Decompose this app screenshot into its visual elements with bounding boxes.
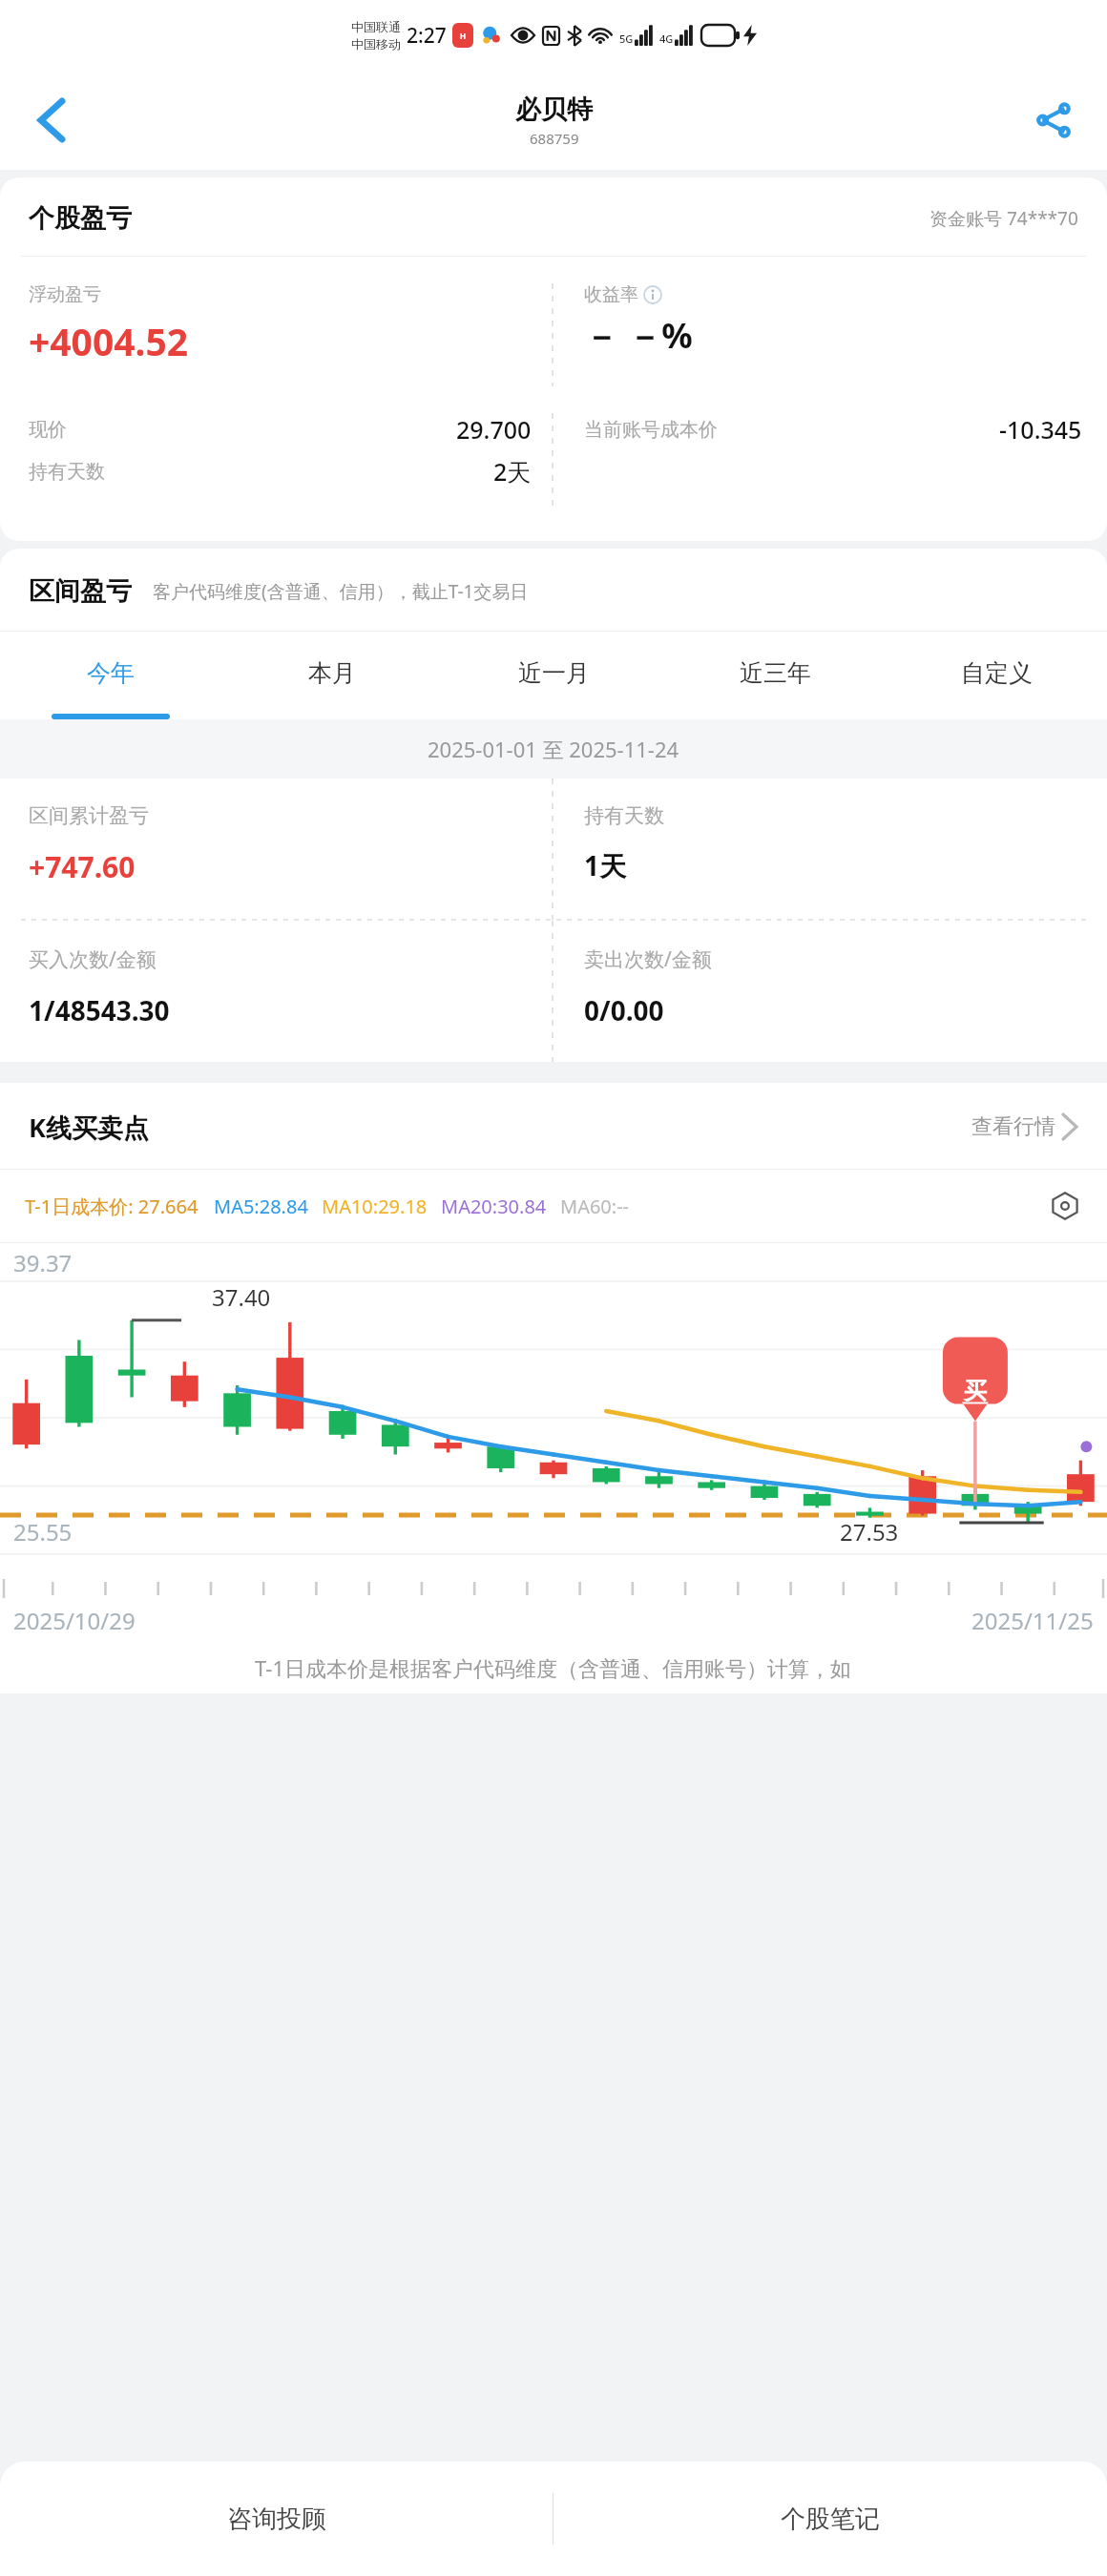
staticText: 688759 bbox=[530, 129, 579, 148]
button[interactable]: 个股笔记 bbox=[553, 2462, 1107, 2576]
button[interactable]: 近一月 bbox=[443, 632, 664, 714]
staticText: MA60:-- bbox=[560, 1194, 630, 1219]
staticText: 37.40 bbox=[212, 1281, 271, 1313]
staticText: 必贝特 bbox=[515, 93, 593, 126]
button[interactable]: Chart settings bbox=[1046, 1187, 1084, 1225]
staticText: 近三年 bbox=[740, 658, 811, 688]
staticText: MA5:28.84 bbox=[214, 1194, 308, 1219]
staticText: 本月 bbox=[308, 658, 356, 688]
staticText: MA10:29.18 bbox=[322, 1194, 428, 1219]
staticText: 区间盈亏 bbox=[29, 575, 132, 608]
staticText: 中国移动 bbox=[351, 36, 401, 52]
staticText: 0/0.00 bbox=[584, 992, 664, 1028]
staticText: 29.700 bbox=[456, 413, 532, 446]
staticText: 咨询投顾 bbox=[227, 2503, 326, 2535]
staticText: 卖出次数/金额 bbox=[584, 945, 712, 973]
staticText: H bbox=[460, 31, 467, 41]
staticText: 买 bbox=[964, 1377, 987, 1405]
staticText: 买入次数/金额 bbox=[29, 945, 157, 973]
staticText: -10.345 bbox=[999, 413, 1082, 446]
staticText: 2:27 bbox=[407, 22, 447, 50]
button[interactable]: Back bbox=[21, 90, 82, 151]
staticText: 5G bbox=[619, 31, 634, 46]
staticText: 浮动盈亏 bbox=[29, 283, 101, 306]
staticText: 持有天数 bbox=[584, 803, 664, 828]
staticText: 25.55 bbox=[13, 1516, 73, 1548]
button[interactable]: 查看行情 bbox=[966, 1108, 1082, 1146]
button[interactable]: 近三年 bbox=[664, 632, 886, 714]
staticText: 近一月 bbox=[518, 658, 590, 688]
staticText: 今年 bbox=[87, 658, 135, 688]
staticText: 1/48543.30 bbox=[29, 992, 170, 1028]
staticText: 当前账号成本价 bbox=[584, 418, 718, 442]
staticText: 4G bbox=[659, 31, 674, 46]
button[interactable]: 今年 bbox=[0, 632, 221, 714]
staticText: 中国联通 bbox=[351, 19, 401, 34]
staticText: 收益率 bbox=[584, 283, 638, 306]
button[interactable]: 自定义 bbox=[886, 632, 1107, 714]
button[interactable]: Share bbox=[1023, 90, 1084, 151]
staticText: MA20:30.84 bbox=[441, 1194, 547, 1219]
staticText: 2025/10/29 bbox=[13, 1605, 136, 1636]
staticText: K线买卖点 bbox=[29, 1110, 149, 1145]
staticText: +747.60 bbox=[29, 847, 136, 886]
staticText: 2025-01-01 至 2025-11-24 bbox=[428, 735, 679, 763]
staticText: 2025/11/25 bbox=[971, 1605, 1094, 1636]
staticText: 个股盈亏 bbox=[29, 202, 132, 235]
staticText: 资金账号 74***70 bbox=[929, 206, 1078, 231]
button[interactable]: 本月 bbox=[221, 632, 443, 714]
staticText: +4004.52 bbox=[29, 316, 189, 366]
staticText: 27.53 bbox=[840, 1516, 899, 1548]
staticText: 区间累计盈亏 bbox=[29, 803, 149, 828]
staticText: 2天 bbox=[493, 455, 532, 488]
staticText: 39.37 bbox=[13, 1247, 73, 1278]
staticText: 现价 bbox=[29, 418, 67, 442]
staticText: 个股笔记 bbox=[781, 2503, 880, 2535]
staticText: 客户代码维度(含普通、信用），截止T-1交易日 bbox=[153, 579, 529, 604]
staticText: 自定义 bbox=[961, 658, 1033, 688]
staticText: 查看行情 bbox=[971, 1113, 1055, 1140]
staticText: T-1日成本价: 27.664 bbox=[25, 1194, 198, 1219]
staticText: － －% bbox=[584, 312, 693, 359]
staticText: 1天 bbox=[584, 847, 627, 883]
button[interactable]: 咨询投顾 bbox=[0, 2462, 553, 2576]
staticText: T-1日成本价是根据客户代码维度（含普通、信用账号）计算，如 bbox=[255, 1653, 852, 1682]
staticText: 持有天数 bbox=[29, 460, 105, 484]
